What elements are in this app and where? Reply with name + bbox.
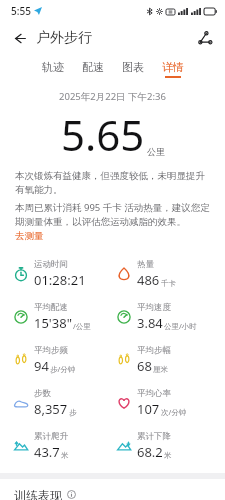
button[interactable]: 平均速度 [112,295,225,338]
button[interactable]: 热量 [112,252,225,295]
staticText: 图表 [122,60,144,74]
staticText: 本次锻炼有益健康，但强度较低，未明显提升有氧能力。 [15,170,210,196]
staticText: 厘米 [153,365,168,374]
staticText: 热量 [137,259,154,270]
button[interactable]: 平均步幅 [112,338,225,381]
staticText: 平均步幅 [137,345,171,356]
staticText: 次/分钟 [161,407,187,417]
staticText: 5:55 [11,4,31,18]
button[interactable]: Share [192,25,218,51]
staticText: 43.7 [34,443,60,461]
staticText: 米 [61,451,69,460]
staticText: /公里 [73,321,91,331]
staticText: 详情 [162,60,184,74]
staticText: 户外步行 [36,29,92,47]
staticText: 去测量 [15,230,44,242]
staticText: 步 [69,408,77,417]
staticText: 配速 [82,60,104,74]
staticText: 2025年2月22日 下午2:36 [0,90,225,103]
staticText: 步数 [34,388,51,399]
staticText: 运动时间 [34,259,68,270]
staticText: 486 [137,271,160,289]
button[interactable]: 去测量 [15,230,44,242]
button[interactable]: Back [6,25,32,51]
button[interactable]: 轨迹 [33,58,73,80]
button[interactable]: 运动时间 [0,252,112,295]
staticText: 5.65 [61,106,145,163]
button[interactable]: 步数 [0,381,112,424]
button[interactable]: 累计下降 [112,424,225,467]
staticText: 68 [137,357,152,375]
staticText: 平均步频 [34,345,68,356]
staticText: 15'38" [34,314,72,332]
button[interactable]: 平均步频 [0,338,112,381]
staticText: 公里 [147,146,165,157]
staticText: 本周已累计消耗 995 千卡 活动热量，建议您定期测量体重，以评估您运动减脂的效… [15,201,210,228]
staticText: 训练表现 [14,488,62,500]
staticText: 平均配速 [34,302,68,313]
button[interactable]: 配速 [73,58,113,80]
staticText: 轨迹 [42,60,64,74]
staticText: 公里/小时 [164,321,197,331]
staticText: 累计爬升 [34,431,68,442]
button[interactable]: 平均配速 [0,295,112,338]
staticText: 平均速度 [137,302,171,313]
staticText: 累计下降 [137,431,171,442]
button[interactable]: 详情 [153,58,193,80]
staticText: 千卡 [161,279,176,288]
staticText: 68.2 [137,443,163,461]
staticText: 米 [164,451,172,460]
staticText: 步/分钟 [50,364,76,374]
staticText: 107 [137,400,160,418]
button[interactable]: 累计爬升 [0,424,112,467]
button[interactable]: 平均心率 [112,381,225,424]
staticText: 平均心率 [137,388,171,399]
button[interactable]: 图表 [113,58,153,80]
button[interactable]: Info [65,488,77,500]
staticText: 8,357 [34,400,68,418]
staticText: 01:28:21 [34,271,86,289]
staticText: 94 [34,357,49,375]
staticText: 3.84 [137,314,163,332]
